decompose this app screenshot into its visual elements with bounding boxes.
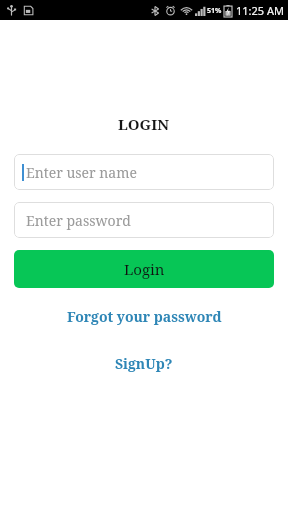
button[interactable]: SignUp? [0, 350, 288, 377]
other: Battery charging 51 percent [224, 5, 232, 17]
button[interactable]: Enter password [14, 202, 274, 238]
button[interactable]: Login [14, 250, 274, 288]
staticText: Enter password [26, 211, 131, 230]
staticText: Forgot your password [67, 307, 222, 326]
other: Wi-Fi [181, 5, 192, 16]
button[interactable]: Forgot your password [0, 303, 288, 330]
staticText: Enter user name [26, 163, 137, 182]
other: USB connected [6, 5, 17, 16]
other: SD card [23, 5, 34, 16]
staticText: 11:25 AM [236, 3, 284, 18]
staticText: Login [124, 259, 165, 279]
button[interactable]: Enter user name [14, 154, 274, 190]
staticText: 51% [207, 6, 222, 16]
other: Cellular signal [195, 5, 206, 16]
other: Bluetooth [150, 6, 160, 16]
staticText: SignUp? [115, 354, 173, 373]
other: Alarm set [165, 5, 176, 16]
staticText: LOGIN [118, 114, 170, 134]
